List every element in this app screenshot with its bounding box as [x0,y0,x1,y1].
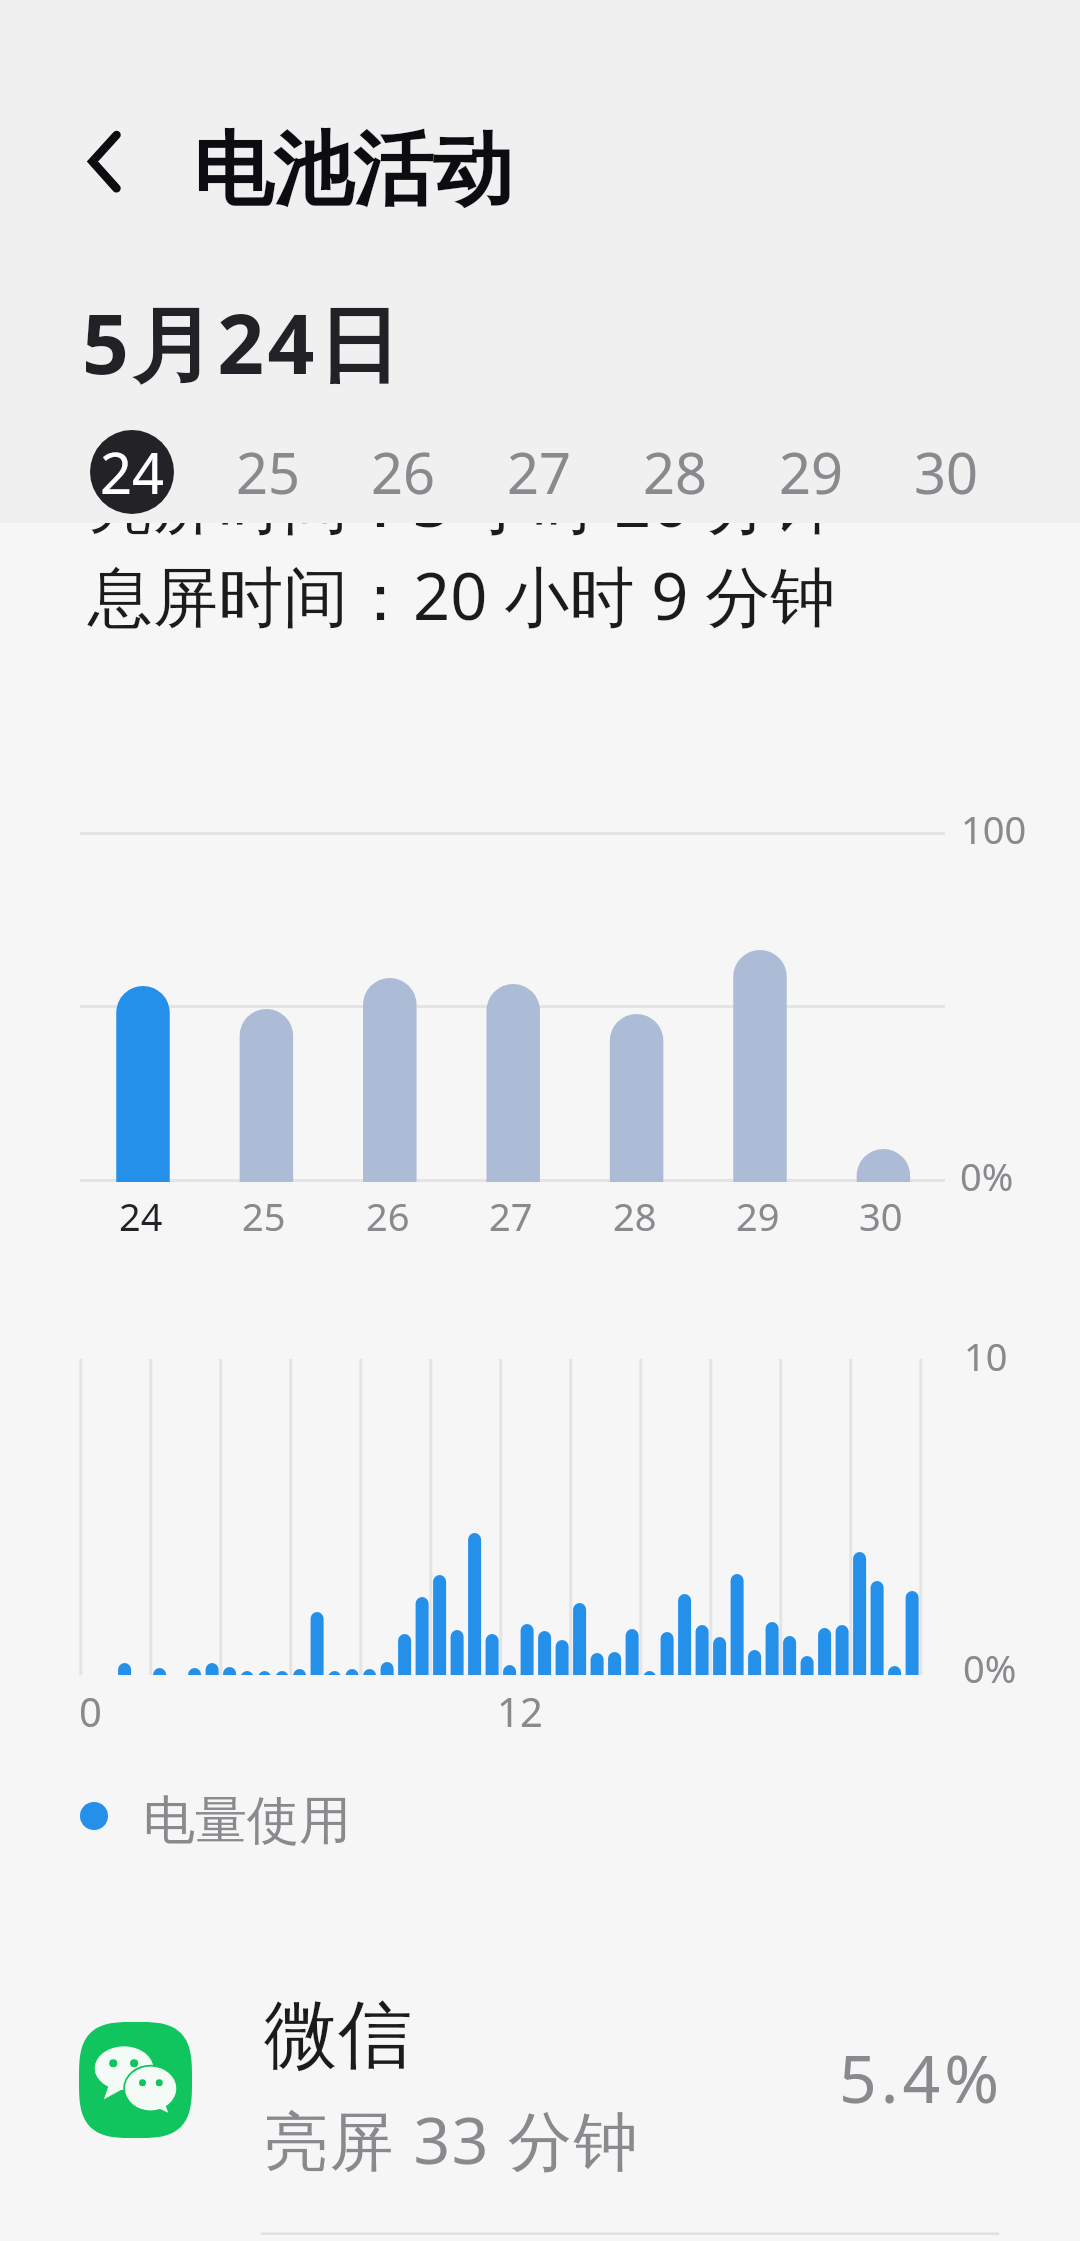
staticText: 28 [613,1190,657,1242]
staticText: 息屏时间：20 小时 9 分钟 [88,551,836,640]
staticText: 微信 [264,1989,412,2082]
staticText: 24 [119,1190,163,1242]
staticText: 亮屏时间：3 小时 26 分钟 [88,458,836,547]
staticText: 5月24日 [82,286,403,398]
staticText: 10 [964,1330,1008,1382]
staticText: 30 [859,1190,903,1242]
staticText: 电池活动 [193,120,513,221]
button[interactable]: 28 [633,430,717,514]
staticText: 25 [242,1190,286,1242]
staticText: 30 [914,434,979,510]
staticText: 25 [236,434,301,510]
button[interactable]: Back [53,110,156,213]
staticText: 27 [507,434,572,510]
staticText: 26 [366,1190,410,1242]
button[interactable]: 26 [361,430,445,514]
staticText: 0% [963,1642,1017,1694]
button[interactable]: 27 [497,430,581,514]
staticText: 0% [960,1150,1014,1202]
button[interactable]: 24 [90,430,174,514]
button[interactable]: 25 [226,430,310,514]
staticText: 电量使用 [143,1788,351,1854]
button[interactable]: 30 [904,430,988,514]
staticText: 5.4% [839,2032,1004,2122]
button[interactable]: 29 [769,430,853,514]
button[interactable]: 电量使用 [62,1786,382,1868]
staticText: 28 [643,434,708,510]
staticText: 亮屏 33 分钟 [264,2096,640,2183]
staticText: 29 [736,1190,780,1242]
staticText: 26 [371,434,436,510]
staticText: 12 [497,1684,543,1738]
staticText: 24 [100,434,165,510]
staticText: 27 [489,1190,533,1242]
button[interactable]: 微信 [0,1985,1080,2175]
staticText: 0 [79,1684,102,1738]
staticText: 29 [779,434,844,510]
staticText: 100 [961,803,1027,855]
